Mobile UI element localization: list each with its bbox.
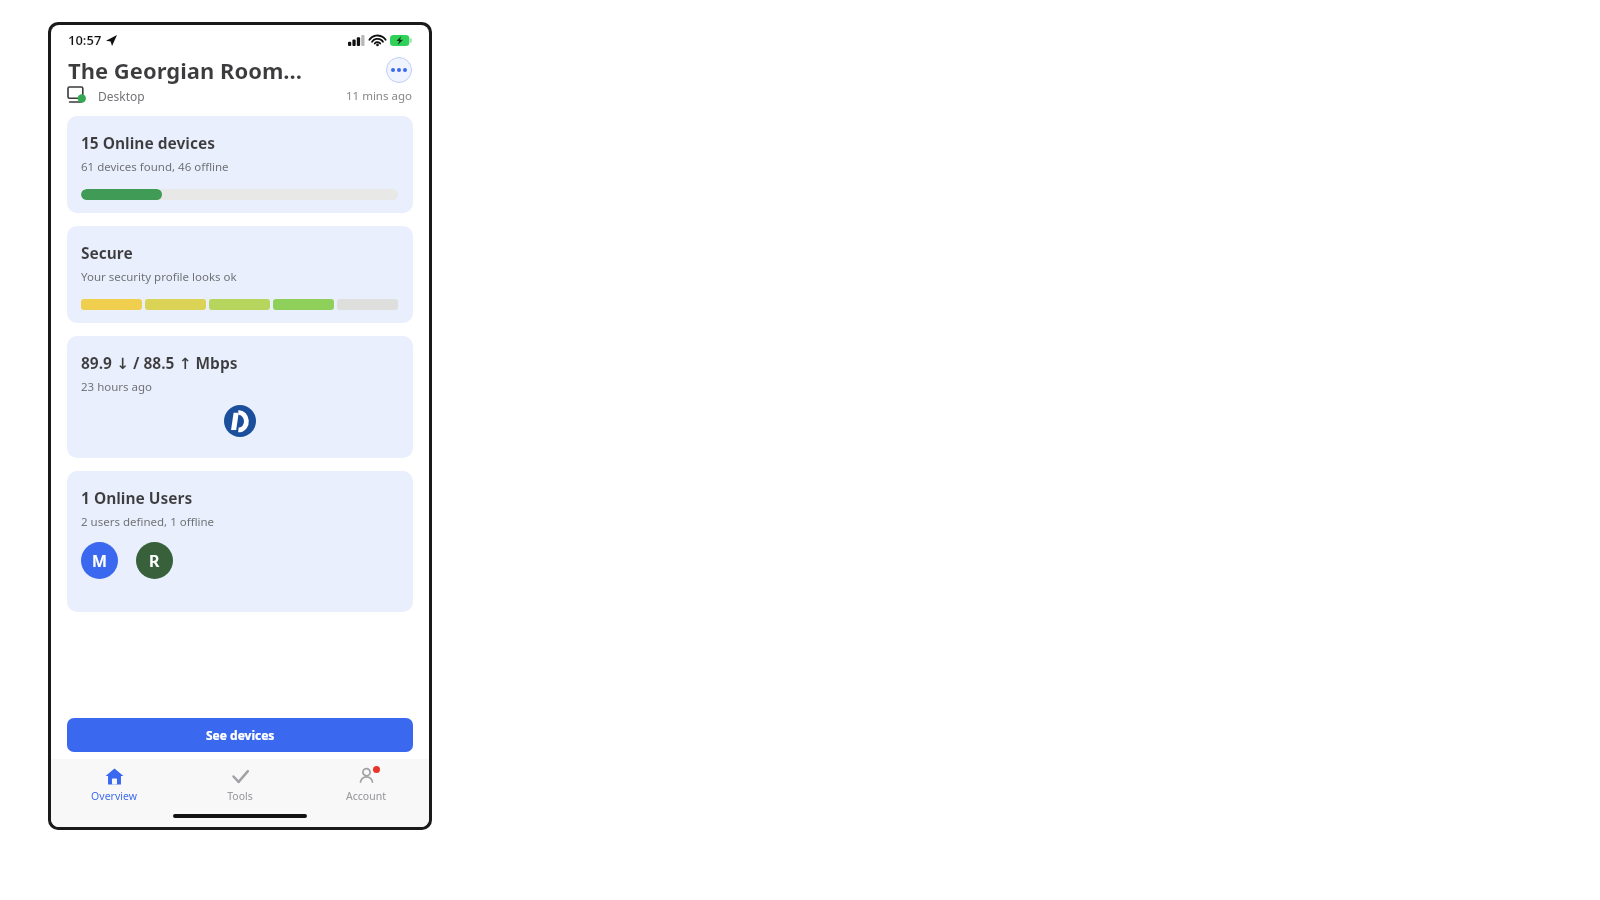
button[interactable]: M bbox=[81, 542, 118, 579]
button[interactable]: More options bbox=[386, 57, 412, 83]
button[interactable]: See devices bbox=[67, 718, 413, 752]
staticText: 89.9 ↓ / 88.5 ↑ Mbps bbox=[81, 352, 238, 373]
staticText: 10:57 bbox=[68, 31, 102, 49]
staticText: Overview bbox=[91, 789, 137, 803]
staticText: 61 devices found, 46 offline bbox=[81, 159, 229, 175]
staticText: Account bbox=[346, 789, 386, 803]
staticText: M bbox=[92, 550, 107, 572]
staticText: Secure bbox=[81, 242, 133, 263]
staticText: 1 Online Users bbox=[81, 487, 193, 508]
button[interactable]: Overview bbox=[51, 759, 177, 811]
button[interactable]: Account bbox=[303, 759, 429, 811]
staticText: 15 Online devices bbox=[81, 132, 215, 153]
staticText: 11 mins ago bbox=[346, 88, 412, 104]
staticText: R bbox=[149, 550, 160, 572]
button[interactable]: Secure bbox=[67, 226, 413, 323]
staticText: Desktop bbox=[98, 88, 145, 104]
staticText: See devices bbox=[206, 727, 275, 743]
button[interactable]: R bbox=[136, 542, 173, 579]
button[interactable]: 89.9 ↓ / 88.5 ↑ Mbps bbox=[67, 336, 413, 458]
staticText: Your security profile looks ok bbox=[81, 269, 237, 285]
button[interactable]: 1 Online Users bbox=[67, 471, 413, 612]
staticText: 2 users defined, 1 offline bbox=[81, 514, 215, 530]
button[interactable]: 15 Online devices bbox=[67, 116, 413, 213]
staticText: Tools bbox=[227, 789, 253, 803]
button[interactable]: Tools bbox=[177, 759, 303, 811]
staticText: The Georgian Room… bbox=[68, 55, 303, 85]
staticText: 23 hours ago bbox=[81, 379, 153, 395]
